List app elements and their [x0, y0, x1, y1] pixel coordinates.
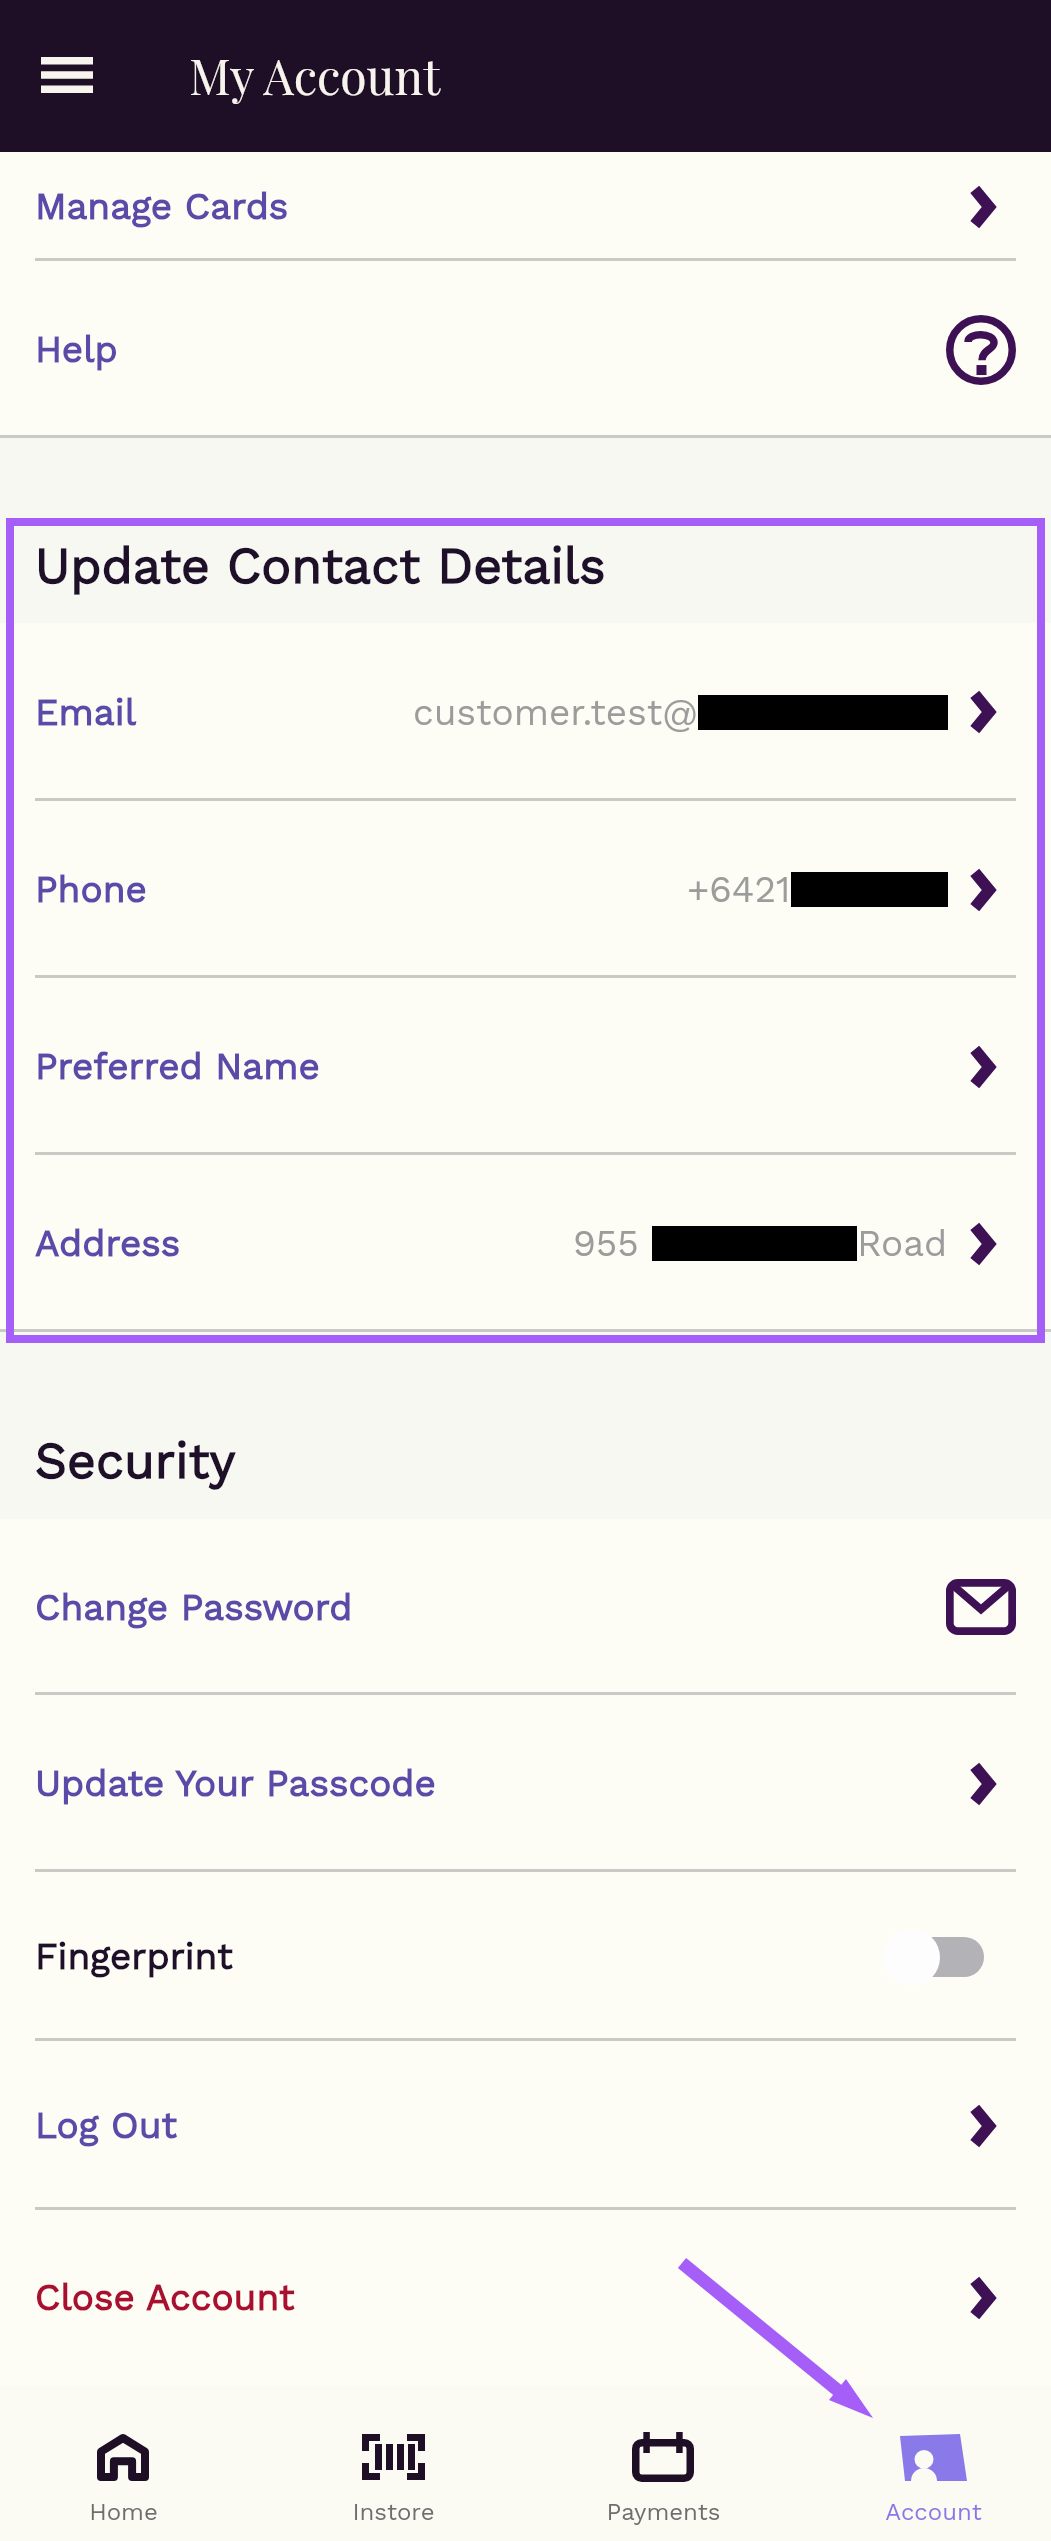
button[interactable]: Log Out: [0, 2041, 1051, 2210]
button[interactable]: Change Password: [0, 1519, 1051, 1695]
staticText: Manage Cards: [35, 185, 289, 228]
staticText: Update Your Passcode: [35, 1762, 436, 1805]
button[interactable]: Payments: [543, 2385, 783, 2541]
button[interactable]: Manage Cards: [0, 152, 1051, 261]
button[interactable]: Fingerprint: [0, 1872, 1051, 2041]
button[interactable]: Account: [813, 2385, 1051, 2541]
button[interactable]: Instore: [273, 2385, 513, 2541]
staticText: Preferred Name: [35, 1045, 320, 1088]
staticText: Help: [35, 328, 118, 371]
button[interactable]: Home: [3, 2385, 243, 2541]
button[interactable]: Help: [0, 261, 1051, 438]
staticText: My Account: [189, 43, 441, 107]
staticText: Update Contact Details: [35, 536, 606, 595]
staticText: Road: [857, 1222, 948, 1265]
staticText: +6421: [687, 868, 791, 911]
button[interactable]: Update Your Passcode: [0, 1695, 1051, 1872]
staticText: Account: [885, 2498, 982, 2526]
staticText: Payments: [606, 2498, 721, 2526]
staticText: customer.test@: [413, 691, 698, 734]
staticText: Phone: [35, 868, 147, 911]
staticText: Instore: [352, 2498, 435, 2526]
staticText: 955: [573, 1222, 652, 1265]
button[interactable]: Phone: [0, 801, 1051, 978]
button[interactable]: Open navigation menu: [7, 15, 126, 134]
staticText: Email: [35, 691, 136, 734]
staticText: Address: [35, 1222, 181, 1265]
button[interactable]: Email: [0, 623, 1051, 801]
staticText: Close Account: [35, 2276, 295, 2319]
button[interactable]: Close Account: [0, 2210, 1051, 2385]
staticText: Fingerprint: [35, 1935, 233, 1978]
button[interactable]: Preferred Name: [0, 978, 1051, 1155]
staticText: Security: [35, 1431, 236, 1490]
staticText: Home: [89, 2498, 158, 2526]
staticText: Change Password: [35, 1586, 353, 1629]
button[interactable]: Address: [0, 1155, 1051, 1332]
staticText: Log Out: [35, 2104, 178, 2147]
